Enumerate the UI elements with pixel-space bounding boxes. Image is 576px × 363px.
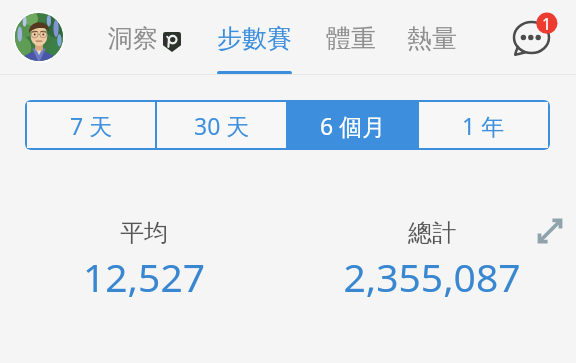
staticText: 1: [542, 13, 552, 35]
staticText: 熱量: [407, 23, 457, 54]
button[interactable]: 洞察: [108, 0, 181, 75]
staticText: 總計: [408, 218, 456, 248]
button[interactable]: 6 個月: [288, 102, 417, 148]
staticText: 平均: [120, 218, 168, 248]
button[interactable]: 體重: [326, 0, 376, 75]
staticText: 洞察: [108, 23, 158, 54]
button[interactable]: Expand: [530, 211, 570, 251]
staticText: 1 年: [462, 110, 505, 141]
staticText: 體重: [326, 23, 376, 54]
staticText: 步數賽: [217, 23, 292, 54]
staticText: 12,527: [83, 250, 205, 303]
staticText: 6 個月: [320, 110, 386, 141]
button[interactable]: 1 年: [419, 102, 548, 148]
button[interactable]: 步數賽: [217, 0, 292, 75]
staticText: 2,355,087: [343, 250, 521, 303]
button[interactable]: 30 天: [157, 102, 286, 148]
button[interactable]: 7 天: [27, 102, 155, 148]
button[interactable]: Profile: [13, 11, 65, 63]
button[interactable]: Messages: [508, 12, 556, 60]
staticText: 30 天: [194, 110, 250, 141]
button[interactable]: 熱量: [407, 0, 457, 75]
staticText: 7 天: [70, 110, 113, 141]
